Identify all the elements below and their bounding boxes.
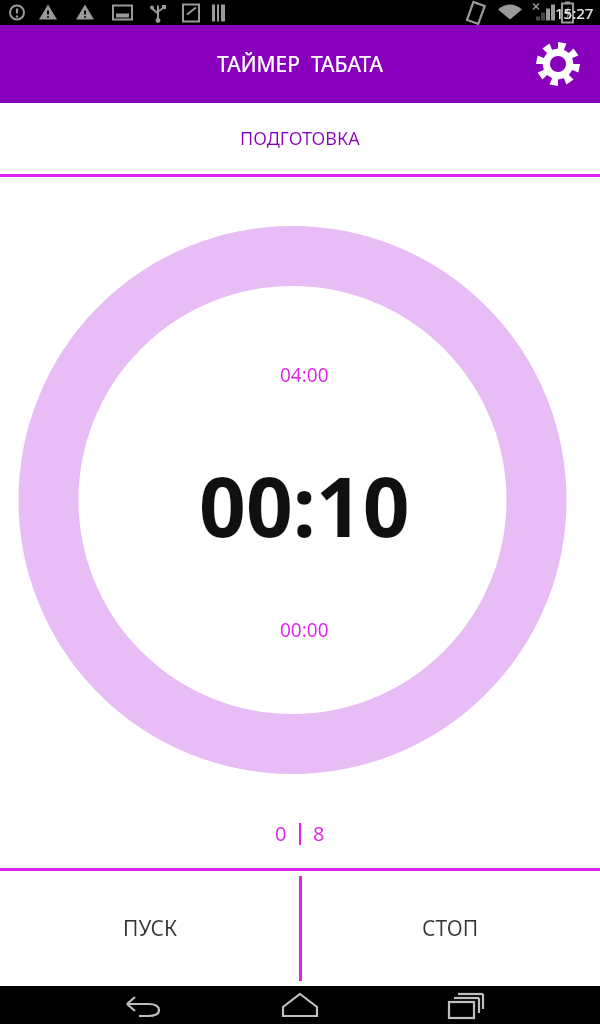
staticText: 00:00 bbox=[280, 617, 329, 643]
staticText: 00:10 bbox=[199, 449, 410, 561]
staticText: ПУСК bbox=[123, 914, 178, 943]
staticText: 8 bbox=[313, 820, 325, 847]
staticText: СТОП bbox=[422, 914, 479, 943]
staticText: 04:00 bbox=[280, 362, 329, 388]
button[interactable]: ПОДГОТОВКА bbox=[0, 103, 600, 174]
staticText: 15:27 bbox=[555, 3, 594, 23]
button[interactable]: Settings bbox=[532, 38, 584, 90]
staticText: 0 bbox=[275, 820, 287, 847]
button[interactable]: СТОП bbox=[300, 871, 600, 986]
staticText: ТАЙМЕР ТАБАТА bbox=[217, 50, 383, 79]
button[interactable]: ПУСК bbox=[0, 871, 300, 986]
staticText: ПОДГОТОВКА bbox=[240, 126, 360, 151]
